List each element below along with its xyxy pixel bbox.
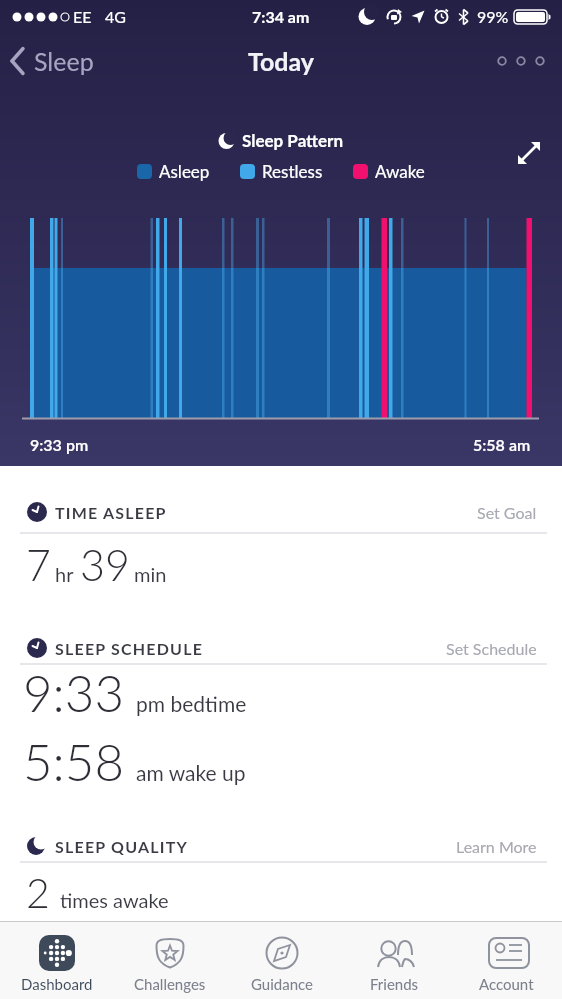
staticText: SLEEP QUALITY xyxy=(55,837,189,856)
staticText: Dashboard xyxy=(21,975,93,993)
staticText: 4G xyxy=(105,7,126,26)
staticText: 7:34 am xyxy=(252,7,310,26)
staticText: SLEEP SCHEDULE xyxy=(55,639,204,658)
button[interactable] xyxy=(497,55,545,67)
staticText: Guidance xyxy=(251,975,313,993)
button[interactable]: Guidance xyxy=(226,922,338,999)
staticText: Challenges xyxy=(134,975,206,993)
staticText: EE xyxy=(73,7,92,26)
staticText: Sleep Pattern xyxy=(242,130,344,150)
button[interactable]: Set Schedule xyxy=(446,639,537,658)
button[interactable]: Friends xyxy=(338,922,450,999)
staticText: 2 xyxy=(26,868,50,917)
staticText: min xyxy=(134,562,167,586)
button[interactable]: Account xyxy=(450,922,562,999)
button[interactable]: Dashboard xyxy=(0,922,113,999)
staticText: 39 xyxy=(80,539,130,591)
button[interactable] xyxy=(515,139,543,167)
staticText: TIME ASLEEP xyxy=(55,503,167,522)
staticText: pm bedtime xyxy=(136,691,247,716)
staticText: 99% xyxy=(477,7,509,26)
button[interactable]: Set Goal xyxy=(477,503,537,522)
staticText: Restless xyxy=(262,161,323,181)
staticText: Friends xyxy=(370,975,419,993)
button[interactable]: Learn More xyxy=(456,837,537,856)
staticText: times awake xyxy=(60,888,169,912)
staticText: 5:58 xyxy=(23,731,124,792)
staticText: Awake xyxy=(375,161,425,181)
staticText: Today xyxy=(248,46,315,76)
staticText: Sleep xyxy=(34,46,94,76)
staticText: Asleep xyxy=(159,161,210,181)
staticText: 9:33 pm xyxy=(30,435,89,454)
staticText: am wake up xyxy=(136,760,246,785)
staticText: 5:58 am xyxy=(473,435,531,454)
staticText: 7 xyxy=(26,539,51,591)
button[interactable]: Challenges xyxy=(113,922,226,999)
staticText: hr xyxy=(55,562,74,586)
staticText: Account xyxy=(479,975,534,993)
button[interactable]: Sleep xyxy=(10,46,94,76)
staticText: 9:33 xyxy=(23,662,124,723)
